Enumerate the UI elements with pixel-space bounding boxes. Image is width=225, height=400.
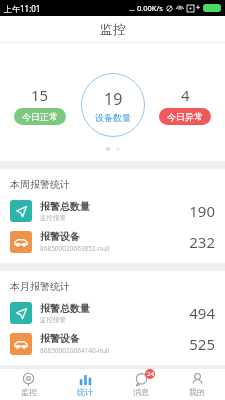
- staticText: 统计: [77, 387, 93, 397]
- button[interactable]: 报警总数量: [0, 298, 225, 328]
- other: 报警设备: [10, 333, 32, 355]
- other: 监控: [22, 373, 35, 386]
- staticText: 监控: [21, 387, 37, 397]
- staticText: ... 0.00K/s: [129, 3, 163, 13]
- staticText: 监控报警: [40, 316, 66, 324]
- staticText: 报警设备: [40, 332, 80, 345]
- staticText: 868500020663852-null: [40, 244, 110, 253]
- staticText: 19: [104, 88, 123, 110]
- other: 报警总数量: [10, 200, 32, 222]
- staticText: 15: [31, 85, 49, 105]
- other: 消息: [135, 373, 148, 386]
- button[interactable]: 统计: [57, 369, 113, 400]
- staticText: 190: [189, 201, 215, 221]
- button[interactable]: 19: [81, 73, 145, 137]
- staticText: 监控: [100, 21, 126, 37]
- staticText: 今日正常: [22, 111, 58, 122]
- button[interactable]: 消息: [113, 369, 169, 400]
- staticText: 24: [147, 370, 154, 378]
- other: 统计: [79, 373, 92, 386]
- staticText: 本月报警统计: [10, 280, 70, 293]
- staticText: 报警总数量: [40, 302, 90, 315]
- staticText: 868500020664140-null: [40, 346, 110, 355]
- other: 报警设备: [10, 231, 32, 253]
- button[interactable]: 报警设备: [0, 328, 225, 359]
- staticText: 监控报警: [40, 214, 66, 222]
- button[interactable]: 15: [14, 85, 66, 125]
- button[interactable]: 4: [159, 85, 211, 125]
- staticText: 232: [189, 232, 215, 252]
- other: 我的: [191, 373, 204, 386]
- staticText: 报警设备: [40, 230, 80, 243]
- staticText: 报警总数量: [40, 200, 90, 213]
- staticText: +: [196, 3, 201, 13]
- other: 报警总数量: [10, 302, 32, 324]
- staticText: 494: [189, 303, 215, 323]
- button[interactable]: 报警总数量: [0, 196, 225, 226]
- staticText: 本周报警统计: [10, 178, 70, 191]
- staticText: 消息: [133, 387, 149, 397]
- staticText: 525: [189, 334, 215, 354]
- staticText: 我的: [189, 387, 205, 397]
- button[interactable]: 报警设备: [0, 226, 225, 257]
- staticText: 设备数量: [95, 112, 131, 123]
- button[interactable]: 我的: [169, 369, 225, 400]
- staticText: 上午11:01: [4, 3, 41, 14]
- staticText: 4: [181, 85, 190, 105]
- button[interactable]: 监控: [0, 369, 57, 400]
- staticText: 今日异常: [167, 111, 203, 122]
